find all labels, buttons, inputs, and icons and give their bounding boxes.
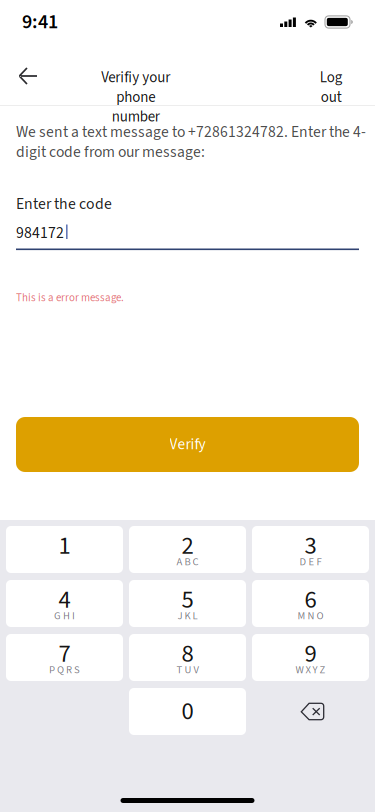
staticText: digit code from our message: (16, 141, 205, 163)
button[interactable]: Back (6, 59, 50, 93)
staticText: 7 (58, 636, 70, 671)
staticText: Verifiy your phone number (101, 67, 170, 128)
staticText: Enter the code (16, 193, 112, 215)
staticText: 984172 (16, 222, 64, 244)
staticText: 1 (58, 528, 70, 563)
staticText: 0 (181, 694, 193, 729)
staticText: 5 (181, 582, 193, 617)
staticText: We sent a text message to +72861324782. … (16, 121, 366, 143)
button[interactable]: 9 (252, 634, 369, 681)
button[interactable]: 6 (252, 580, 369, 627)
staticText: T U V (176, 662, 198, 678)
staticText: 4 (58, 582, 70, 617)
button[interactable]: 0 (129, 688, 246, 735)
staticText: 8 (181, 636, 193, 671)
staticText: A B C (176, 554, 198, 570)
button[interactable]: 8 (129, 634, 246, 681)
button[interactable]: 2 (129, 526, 246, 573)
staticText: 2 (181, 528, 193, 563)
button[interactable]: Log out (309, 67, 353, 107)
button[interactable]: Delete (252, 688, 369, 735)
staticText: 9:41 (22, 8, 58, 36)
staticText: G H I (54, 608, 75, 624)
staticText: 3 (304, 528, 316, 563)
staticText: 6 (304, 582, 316, 617)
staticText: D E F (299, 554, 321, 570)
staticText: This is a error message. (16, 290, 124, 306)
staticText: M N O (297, 608, 323, 624)
button[interactable]: Verify (16, 417, 359, 472)
staticText: J K L (177, 608, 197, 624)
button[interactable]: 1 (6, 526, 123, 573)
button[interactable]: 5 (129, 580, 246, 627)
staticText: Log out (319, 67, 342, 108)
button[interactable]: 4 (6, 580, 123, 627)
button[interactable]: 7 (6, 634, 123, 681)
staticText: P Q R S (49, 662, 80, 678)
button[interactable]: 3 (252, 526, 369, 573)
staticText: Verify (169, 434, 205, 455)
staticText: 9 (304, 636, 316, 671)
staticText: W X Y Z (295, 662, 325, 678)
